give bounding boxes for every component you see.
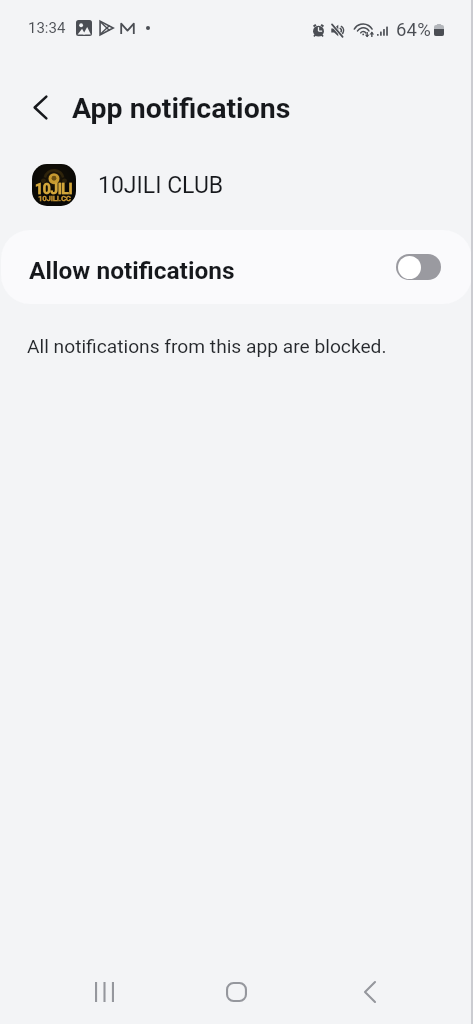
button[interactable]: Recent apps (74, 962, 134, 1022)
button[interactable]: Back (340, 962, 400, 1022)
staticText: 13:34 (28, 19, 66, 37)
button[interactable]: 10JILI (0, 155, 473, 215)
button[interactable]: Home (206, 962, 266, 1022)
staticText: 64% (396, 19, 431, 41)
button[interactable]: Allow notifications (1, 230, 472, 304)
staticText: Allow notifications (29, 256, 235, 285)
staticText: 10JILI CLUB (98, 172, 224, 199)
staticText: All notifications from this app are bloc… (27, 335, 387, 358)
staticText: 10JILI (35, 181, 73, 197)
staticText: App notifications (72, 92, 291, 125)
button[interactable] (396, 254, 441, 280)
staticText: 10JILI.CC (38, 194, 71, 203)
button[interactable]: Back (20, 87, 60, 127)
